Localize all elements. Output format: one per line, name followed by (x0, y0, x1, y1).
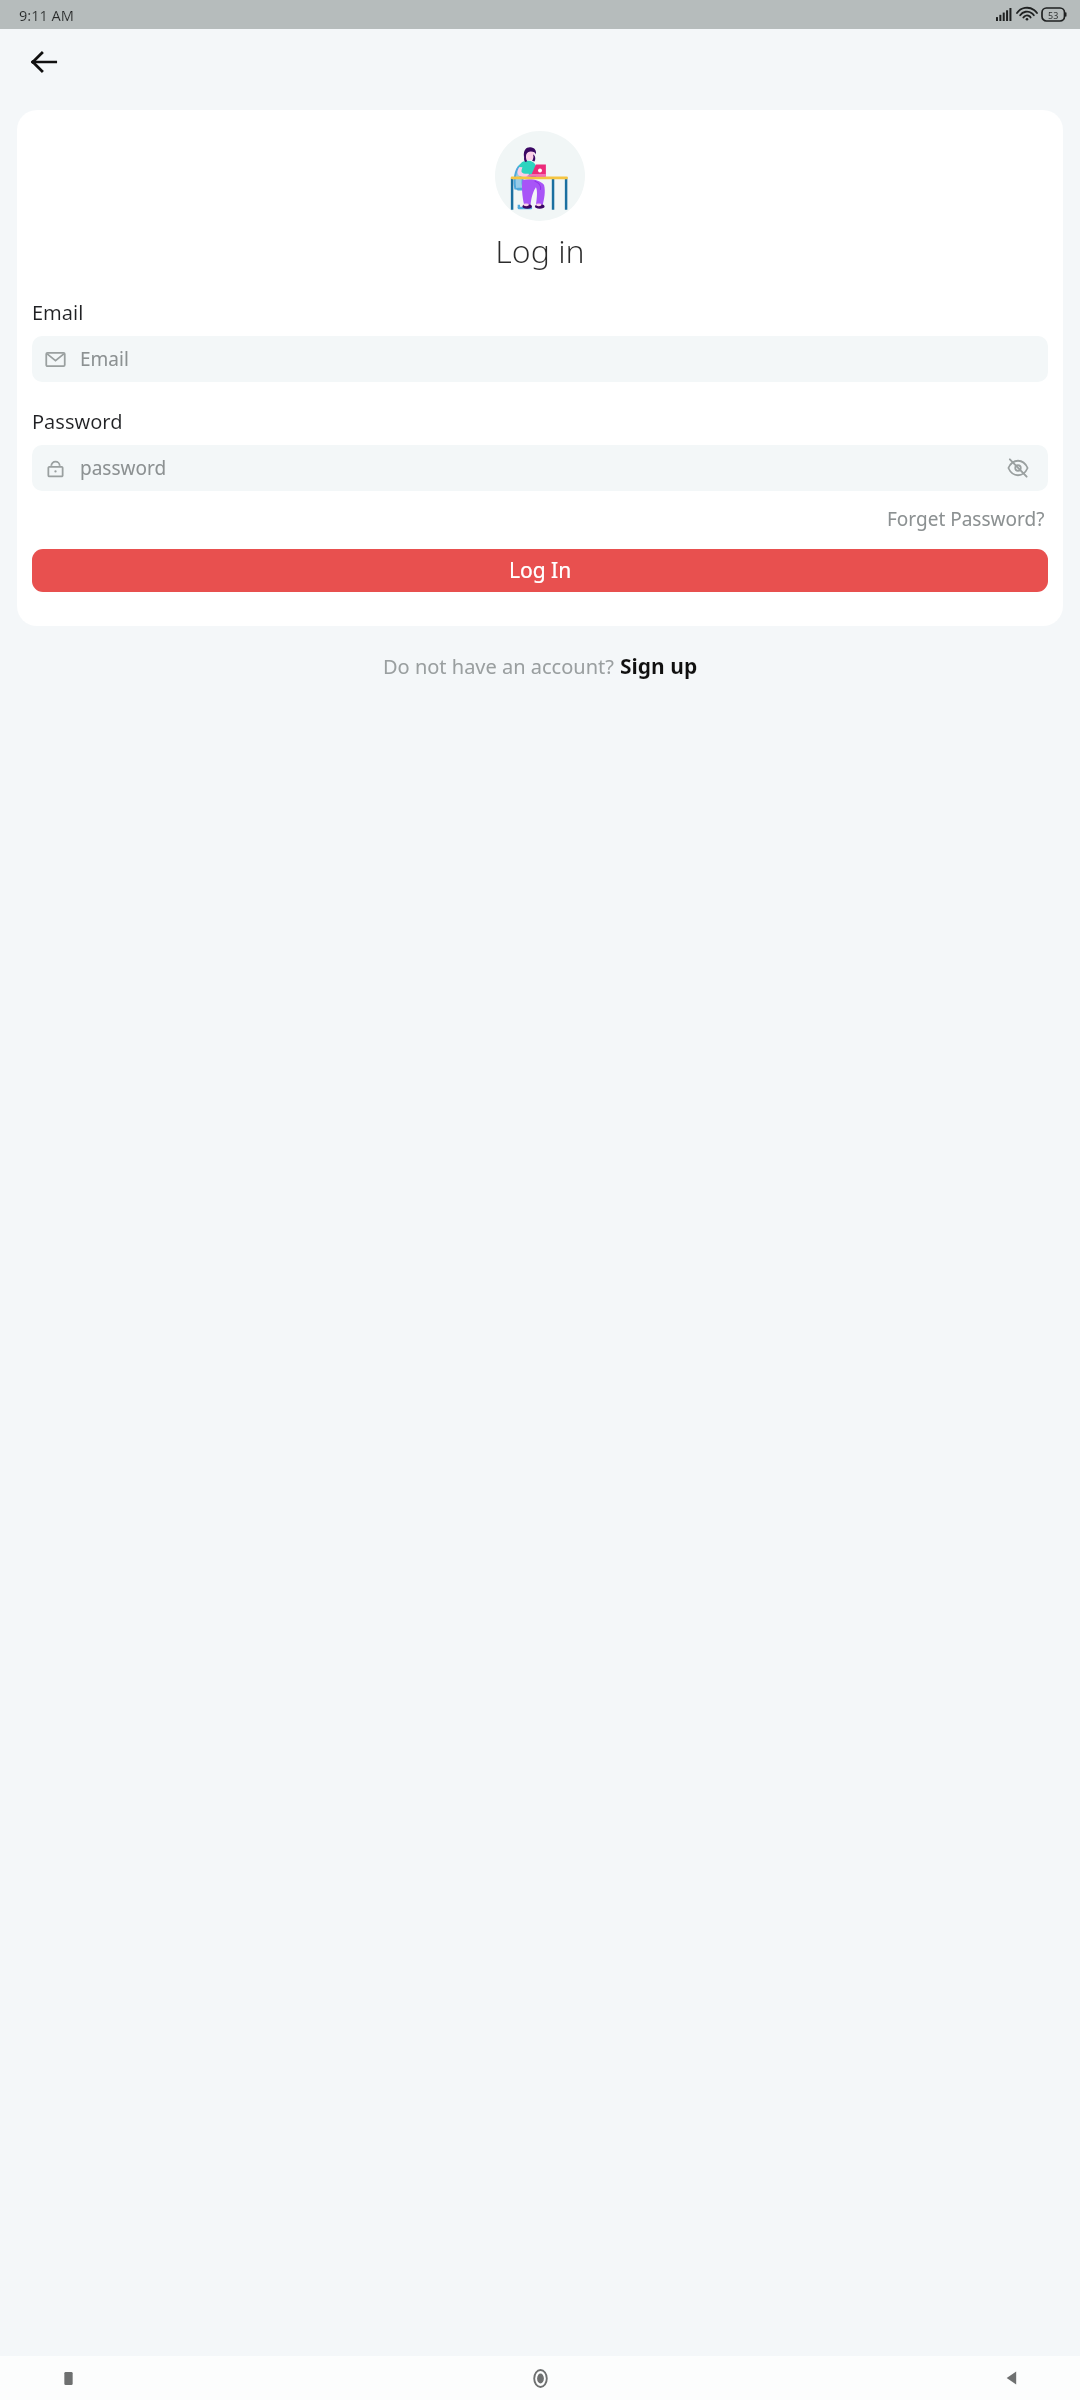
staticText: Log In (509, 556, 572, 585)
button[interactable]: Log In (32, 549, 1048, 592)
button[interactable]: Home (518, 2356, 562, 2400)
staticText: Do not have an account? (383, 653, 620, 680)
staticText: 53 (1048, 9, 1059, 21)
button[interactable]: Back (20, 38, 68, 86)
button[interactable]: Recent apps (46, 2356, 90, 2400)
staticText: Password (32, 408, 123, 435)
button[interactable]: Do not have an account? (0, 652, 1080, 681)
staticText: password (80, 455, 1001, 481)
staticText: Email (80, 346, 1035, 372)
staticText: Log in (17, 229, 1063, 273)
staticText: Sign up (620, 652, 698, 681)
button[interactable]: Email (32, 336, 1048, 382)
button[interactable]: password (32, 445, 1048, 491)
staticText: Forget Password? (887, 506, 1045, 532)
button[interactable]: Forget Password? (884, 503, 1048, 535)
staticText: 9:11 AM (19, 5, 74, 25)
button[interactable]: Show password (1001, 451, 1035, 485)
button[interactable]: Back (990, 2356, 1034, 2400)
staticText: Email (32, 299, 84, 326)
